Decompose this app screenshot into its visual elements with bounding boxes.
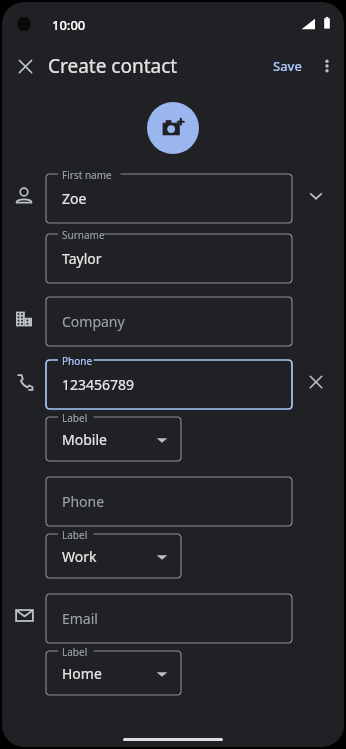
staticText: 10:00: [52, 16, 86, 34]
button[interactable]: Label: [46, 411, 181, 461]
staticText: First name: [62, 168, 112, 182]
button[interactable]: Phone: [46, 471, 292, 526]
staticText: Label: [62, 411, 88, 425]
staticText: Create contact: [48, 53, 178, 79]
button[interactable]: Surname: [46, 228, 292, 283]
button[interactable]: Phone: [46, 354, 292, 409]
staticText: Work: [62, 547, 97, 566]
staticText: Company: [62, 312, 125, 331]
button[interactable]: Label: [46, 528, 181, 578]
button[interactable]: Email: [46, 588, 292, 643]
other: Phone: [2, 354, 46, 409]
staticText: Zoe: [62, 189, 87, 208]
button[interactable]: Company: [46, 291, 292, 346]
staticText: Save: [273, 57, 302, 75]
other: Company: [2, 291, 46, 346]
other: Email: [2, 588, 46, 643]
staticText: Phone: [62, 492, 105, 511]
other: Name: [2, 168, 46, 223]
staticText: Taylor: [62, 249, 102, 268]
staticText: Label: [62, 645, 88, 659]
staticText: 123456789: [62, 375, 135, 394]
staticText: Surname: [62, 228, 105, 242]
button[interactable]: More options: [310, 44, 344, 88]
staticText: Home: [62, 664, 102, 683]
staticText: Phone: [62, 354, 93, 368]
button[interactable]: First name: [46, 168, 292, 223]
staticText: Label: [62, 528, 88, 542]
button[interactable]: Save: [265, 51, 310, 81]
button[interactable]: Close: [2, 44, 48, 88]
button[interactable]: Label: [46, 645, 181, 695]
staticText: Mobile: [62, 430, 107, 449]
button[interactable]: Clear phone number: [292, 354, 340, 409]
button[interactable]: Add photo: [147, 102, 199, 154]
staticText: Email: [62, 609, 98, 628]
button[interactable]: Expand name fields: [292, 168, 340, 223]
